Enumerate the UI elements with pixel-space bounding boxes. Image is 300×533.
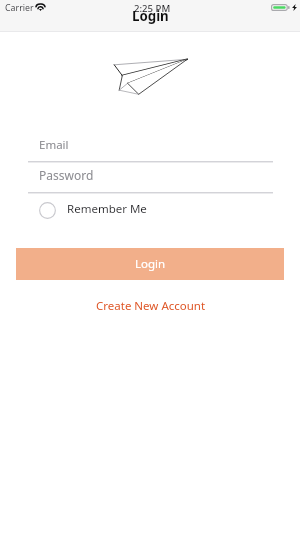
other: Charging (292, 4, 297, 11)
staticText: Password (39, 167, 94, 183)
other: Battery (271, 4, 290, 11)
staticText: Carrier (5, 2, 34, 14)
staticText: Login (132, 7, 169, 25)
button[interactable]: Remember Me (39, 200, 147, 217)
staticText: Login (135, 256, 166, 272)
staticText: Email (39, 137, 69, 153)
button[interactable]: Create New Account (90, 293, 212, 319)
staticText: 2:25 PM (134, 2, 171, 15)
other: Wi-Fi (36, 4, 45, 11)
staticText: Create New Account (96, 298, 206, 314)
button[interactable]: Login (16, 248, 284, 280)
staticText: Remember Me (67, 201, 147, 217)
